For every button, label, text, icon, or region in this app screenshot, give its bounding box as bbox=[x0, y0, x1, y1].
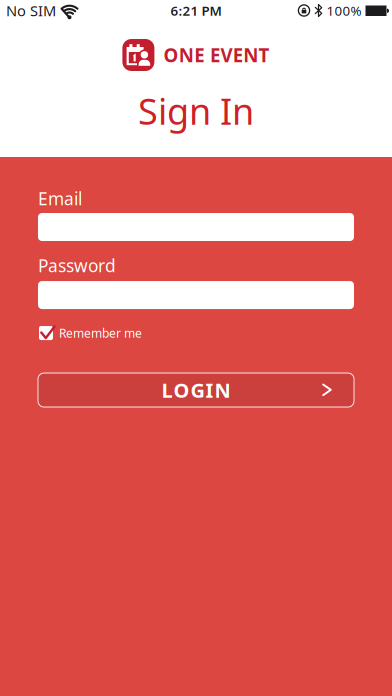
button[interactable] bbox=[38, 281, 354, 309]
staticText: 6:21 PM bbox=[170, 2, 221, 19]
staticText: Sign In bbox=[138, 87, 254, 135]
staticText: 100% bbox=[326, 2, 361, 19]
button[interactable]: Remember me bbox=[38, 325, 142, 341]
button[interactable] bbox=[38, 213, 354, 241]
button[interactable]: LOGIN bbox=[38, 373, 354, 407]
staticText: Password bbox=[38, 254, 116, 277]
staticText: ONE EVENT bbox=[163, 43, 270, 67]
staticText: No SIM bbox=[6, 1, 56, 20]
staticText: Email bbox=[38, 187, 82, 210]
staticText: LOGIN bbox=[161, 377, 230, 403]
staticText: Remember me bbox=[59, 325, 142, 341]
